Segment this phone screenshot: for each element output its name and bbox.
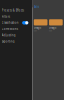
staticText: Filters [2, 15, 10, 18]
staticText: Presets & Effects [2, 9, 24, 12]
button[interactable]: Image [34, 19, 47, 31]
button[interactable]: Image [49, 19, 63, 31]
button[interactable]: Exporting [0, 38, 32, 44]
staticText: Image [34, 26, 42, 29]
button[interactable]: Edit [32, 4, 39, 10]
staticText: Sub [34, 30, 37, 32]
button[interactable]: Filters [0, 13, 32, 20]
staticText: Corrections [2, 27, 18, 31]
staticText: Edit [34, 5, 39, 9]
button[interactable]: Presets & Effects [0, 7, 32, 13]
staticText: Image [49, 26, 57, 29]
button[interactable]: Classification [0, 20, 32, 26]
button[interactable]: Adjusting [0, 32, 32, 38]
staticText: Exporting [2, 40, 15, 43]
staticText: Sub [49, 30, 52, 32]
staticText: Classification [2, 21, 19, 24]
staticText: Adjusting [2, 33, 16, 37]
button[interactable]: Corrections [0, 26, 32, 32]
